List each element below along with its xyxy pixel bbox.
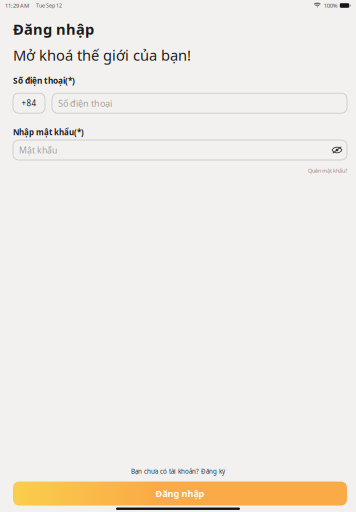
staticText: Bạn chưa có tài khoản? Đăng ký — [131, 467, 225, 475]
button[interactable]: +84 — [13, 93, 45, 113]
staticText: Nhập mật khẩu(*) — [13, 127, 84, 137]
staticText: 11:29 AM — [5, 2, 29, 9]
staticText: Đăng nhập — [155, 487, 204, 500]
staticText: Mật khẩu — [19, 144, 57, 156]
staticText: +84 — [21, 98, 36, 109]
staticText: Tue Sep 12 — [36, 2, 62, 9]
staticText: 100% — [324, 2, 338, 9]
button[interactable]: Bạn chưa có tài khoản? Đăng ký — [131, 467, 225, 475]
button[interactable]: Quên mật khẩu? — [308, 167, 347, 174]
staticText: Đăng nhập — [13, 19, 94, 39]
button[interactable]: Đăng nhập — [13, 481, 347, 505]
button[interactable]: Mật khẩu — [13, 140, 347, 160]
staticText: Số điện thoại(*) — [13, 75, 75, 86]
staticText: Mở khoá thế giới của bạn! — [13, 45, 191, 65]
staticText: Số điện thoại — [58, 97, 112, 109]
button[interactable]: Số điện thoại — [52, 93, 347, 113]
staticText: Quên mật khẩu? — [308, 167, 347, 174]
